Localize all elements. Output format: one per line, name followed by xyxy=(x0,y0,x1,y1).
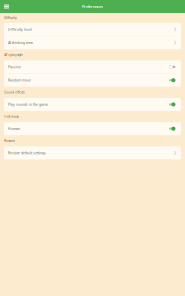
staticText: Preferences xyxy=(82,4,103,9)
staticText: Restore xyxy=(4,139,15,143)
button[interactable]: Difficulty level xyxy=(4,23,181,36)
staticText: Passive xyxy=(8,64,21,69)
staticText: First move xyxy=(4,115,19,119)
button[interactable]: Human xyxy=(4,122,181,135)
button[interactable]: Random move xyxy=(4,74,181,87)
staticText: Random move xyxy=(8,78,31,83)
staticText: AI's play style xyxy=(4,53,23,57)
button[interactable]: Restore default settings xyxy=(4,146,181,159)
staticText: Human xyxy=(8,126,20,131)
button[interactable]: Passive xyxy=(4,60,181,73)
button[interactable]: Play sounds in the game xyxy=(4,98,181,111)
staticText: Difficulty level xyxy=(8,27,32,32)
staticText: Play sounds in the game xyxy=(8,102,48,107)
staticText: AI thinking time xyxy=(8,40,33,45)
button[interactable]: AI thinking time xyxy=(4,36,181,49)
staticText: Difficulty xyxy=(4,16,16,20)
staticText: Restore default settings xyxy=(8,150,46,155)
button[interactable]: Menu xyxy=(0,0,18,13)
staticText: Sound effects xyxy=(4,90,24,94)
